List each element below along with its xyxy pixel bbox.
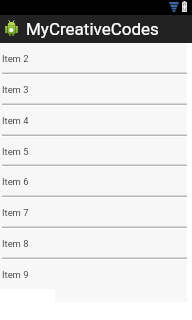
button[interactable]: Item 6 <box>0 166 187 197</box>
other: Download in progress <box>169 2 179 12</box>
other: App icon <box>5 20 18 36</box>
button[interactable]: Item 8 <box>0 228 187 259</box>
staticText: Item 7 <box>2 207 29 218</box>
staticText: Item 9 <box>2 269 29 280</box>
button[interactable]: Item 2 <box>0 43 187 74</box>
staticText: Item 8 <box>2 238 29 249</box>
staticText: MyCreativeCodes <box>26 19 159 39</box>
staticText: Item 2 <box>2 53 29 64</box>
staticText: Item 4 <box>2 115 29 126</box>
button[interactable]: Item 5 <box>0 136 187 167</box>
button[interactable]: App icon <box>0 15 192 43</box>
button[interactable]: Item 3 <box>0 74 187 105</box>
button[interactable]: Item 4 <box>0 105 187 136</box>
staticText: Item 5 <box>2 146 29 157</box>
button[interactable]: Item 9 <box>0 259 187 290</box>
staticText: Item 3 <box>2 84 29 95</box>
button[interactable]: Item 7 <box>0 197 187 228</box>
staticText: Item 6 <box>2 176 29 187</box>
other: Battery charging <box>182 1 187 12</box>
